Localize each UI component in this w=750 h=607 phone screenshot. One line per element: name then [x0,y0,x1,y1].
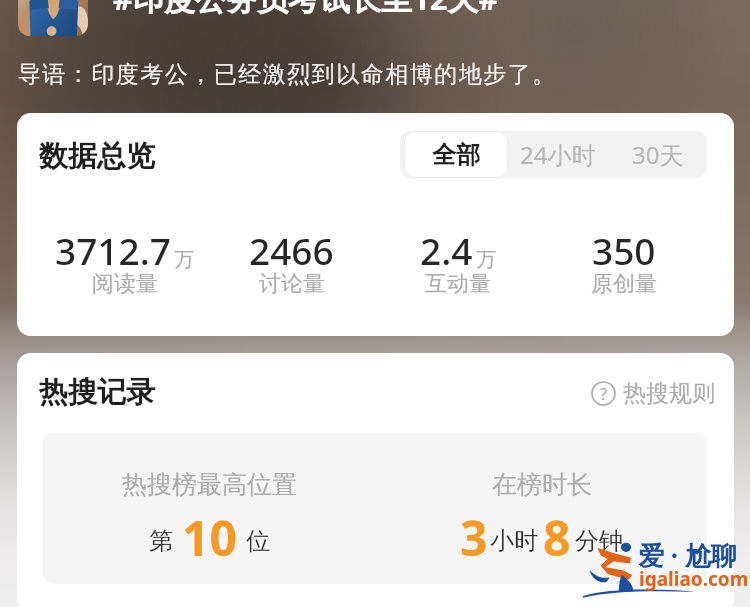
staticText: 第 [149,526,173,556]
staticText: 30天 [632,138,684,171]
staticText: 导语：印度考公，已经激烈到以命相博的地步了。 [17,60,556,89]
staticText: 数据总览 [39,138,155,175]
button[interactable]: 30天 [608,131,707,178]
staticText: 万 [174,247,194,272]
staticText: 2.4 [420,225,473,275]
staticText: 热搜规则 [623,379,715,408]
staticText: 2466 [249,225,334,275]
staticText: 8 [543,505,571,570]
staticText: 爱 · 尬聊 [638,537,737,573]
button[interactable]: 全部 [404,131,508,178]
staticText: 小时 [490,526,538,556]
button[interactable]: 热搜规则 [591,379,715,408]
staticText: 3712.7 [55,225,171,275]
staticText: 热搜记录 [39,374,155,411]
button[interactable]: 24小时 [508,131,608,178]
staticText: 阅读量 [92,270,158,298]
staticText: 全部 [432,140,480,170]
staticText: 24小时 [520,138,596,171]
staticText: 位 [246,526,270,556]
staticText: #印度公务员考试长至12天# [113,0,499,19]
staticText: 在榜时长 [492,469,592,500]
staticText: 互动量 [425,270,491,298]
staticText: 10 [182,505,237,570]
staticText: 分钟 [575,526,623,556]
button[interactable]: Topic avatar [18,0,88,36]
staticText: 万 [476,247,496,272]
staticText: 讨论量 [259,270,325,298]
staticText: 原创量 [591,270,657,298]
staticText: igaliao.com [639,566,749,592]
staticText: ? [600,383,607,405]
staticText: 3 [460,505,488,570]
staticText: 热搜榜最高位置 [122,469,297,500]
staticText: 350 [592,225,656,275]
